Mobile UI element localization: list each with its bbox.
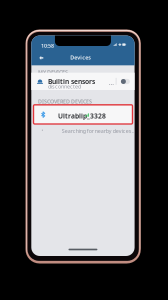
staticText: Builtin sensors	[48, 77, 95, 86]
staticText: MY DEVICES	[38, 69, 68, 76]
staticText: …	[109, 78, 114, 87]
button[interactable]: Ultrablip_3328	[31, 105, 130, 124]
staticText: Devices	[70, 54, 91, 61]
button[interactable]: Builtin sensors	[31, 73, 135, 90]
staticText: Ultrablip_3328	[58, 111, 106, 120]
button[interactable]: Back	[31, 35, 41, 46]
staticText: DISCOVERED DEVICES	[38, 98, 92, 105]
staticText: disconnected	[48, 83, 81, 90]
staticText: Searching for nearby devices…	[62, 127, 136, 134]
staticText: 10:58	[41, 42, 54, 49]
